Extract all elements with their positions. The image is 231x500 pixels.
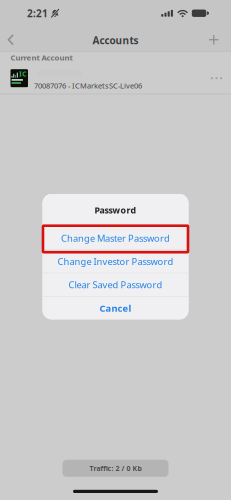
staticText: Change Investor Password [57, 255, 173, 268]
staticText: Current Account [10, 52, 72, 63]
staticText: IC [19, 69, 27, 79]
staticText: Password [94, 204, 136, 216]
button[interactable]: Cancel [42, 297, 188, 319]
staticText: Accounts [92, 33, 138, 47]
staticText: 2:21 [27, 6, 48, 20]
staticText: Traffic: 2 / 0 Kb [89, 464, 141, 473]
staticText: Change Master Password [61, 232, 170, 244]
staticText: 70087076 - ICMarketsSC-Live06 [34, 81, 142, 91]
staticText: Cancel [99, 302, 131, 314]
button[interactable]: Change Master Password [42, 227, 188, 249]
button[interactable]: Add account [195, 25, 219, 52]
button[interactable]: Clear Saved Password [42, 273, 188, 296]
button[interactable]: Back [7, 25, 31, 52]
staticText: Clear Saved Password [68, 278, 162, 291]
button[interactable]: Account options [210, 72, 223, 85]
button[interactable]: Change Investor Password [42, 250, 188, 273]
